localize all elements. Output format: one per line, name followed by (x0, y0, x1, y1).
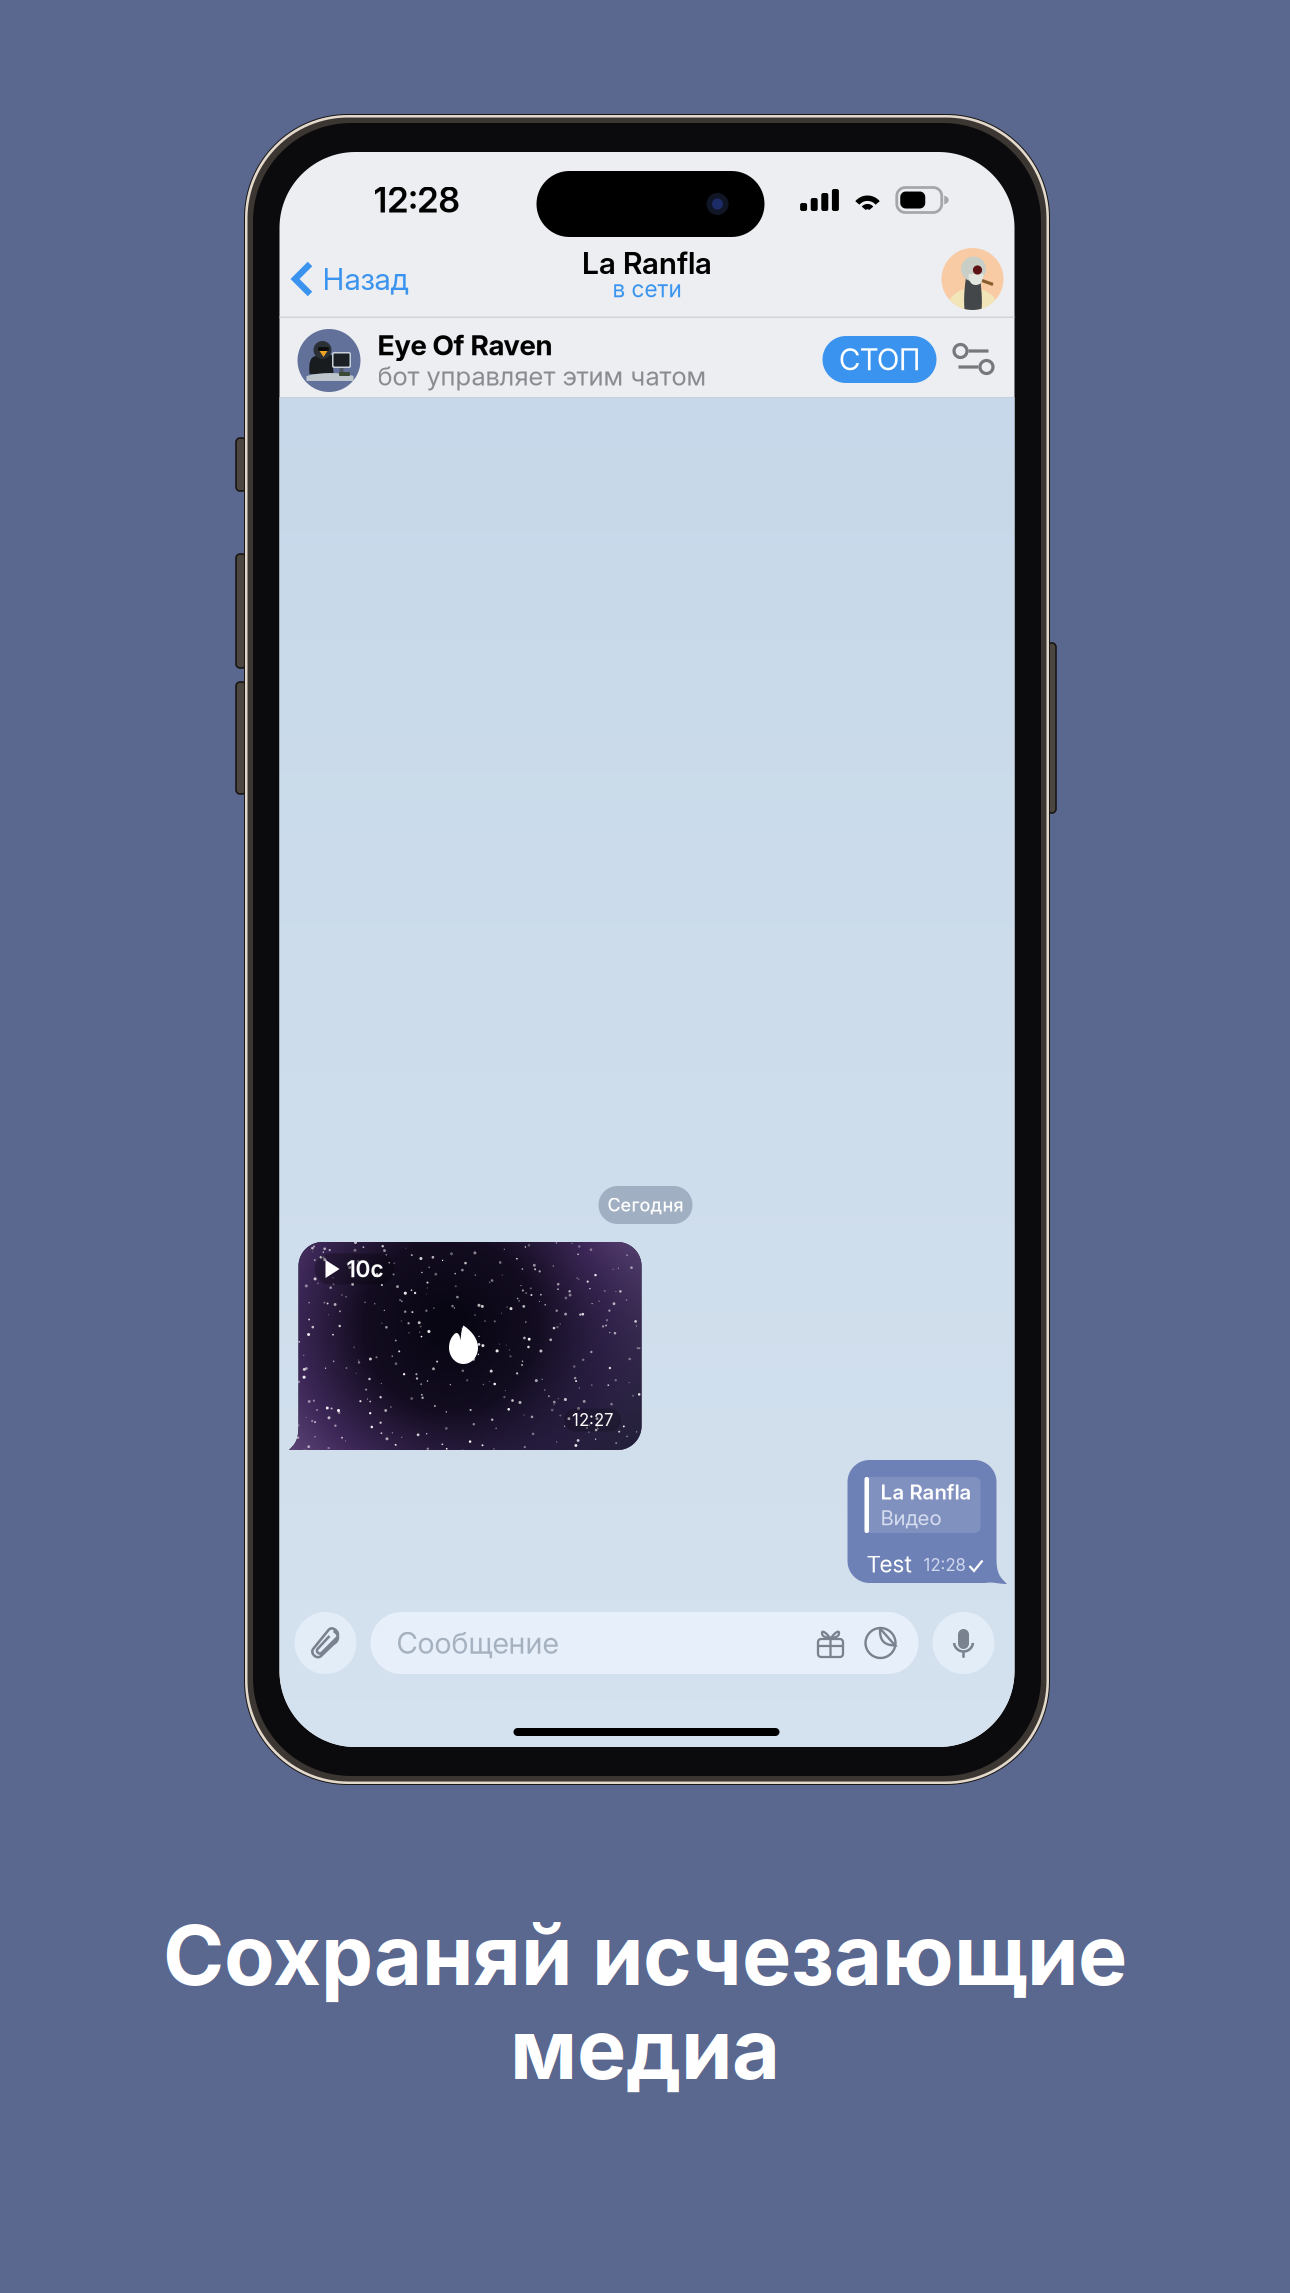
staticText: 12:28 (373, 179, 459, 221)
staticText: Test (866, 1551, 911, 1578)
staticText: Eye Of Raven (377, 328, 552, 362)
staticText: 10c (346, 1255, 383, 1283)
staticText: 12:27 (572, 1410, 613, 1430)
staticText: бот управляет этим чатом (377, 360, 706, 392)
staticText: La Ranfla (582, 245, 712, 281)
staticText: СТОП (839, 342, 920, 377)
button[interactable]: СТОП (822, 336, 936, 383)
staticText: Назад (322, 261, 408, 297)
staticText: Сохраняй исчезающие (163, 1905, 1127, 2005)
staticText: медиа (510, 1999, 780, 2099)
button[interactable]: Назад (287, 242, 487, 316)
staticText: в сети (612, 275, 681, 303)
staticText: 12:28 (923, 1555, 965, 1575)
button[interactable]: Voice message (932, 1612, 994, 1674)
button[interactable]: Bot settings (946, 337, 1000, 381)
staticText: La Ranfla (880, 1480, 971, 1504)
staticText: Сообщение (396, 1625, 558, 1661)
button[interactable]: Send gift (816, 1627, 844, 1658)
button[interactable]: Attach file (294, 1612, 356, 1674)
staticText: Сегодня (607, 1194, 683, 1216)
staticText: Видео (880, 1505, 941, 1530)
button[interactable]: Chat profile (941, 248, 1003, 310)
button[interactable]: Stickers (844, 1627, 896, 1659)
